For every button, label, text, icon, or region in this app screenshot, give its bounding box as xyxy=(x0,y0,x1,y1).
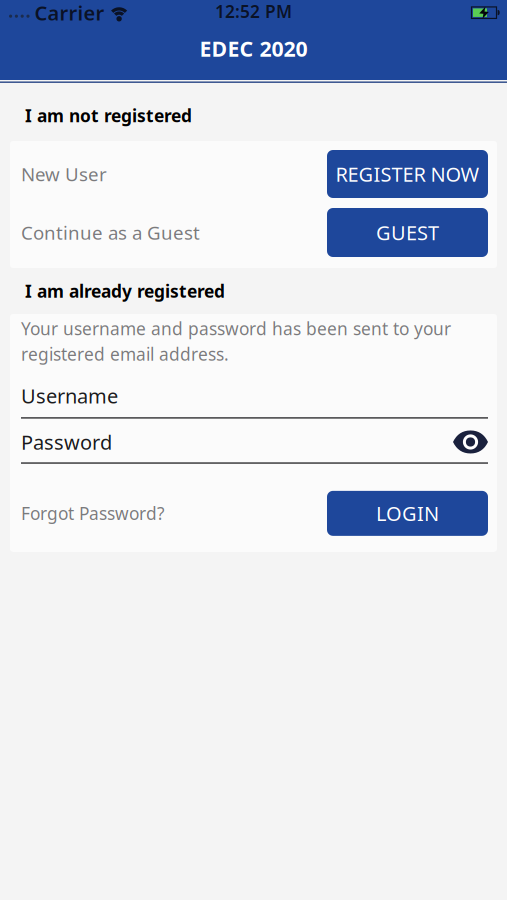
button[interactable]: GUEST xyxy=(327,208,488,257)
button[interactable]: Forgot Password? xyxy=(21,502,165,525)
button[interactable]: Username xyxy=(21,382,488,419)
staticText: LOGIN xyxy=(376,500,439,527)
staticText: Forgot Password? xyxy=(21,502,165,525)
button[interactable]: Password xyxy=(21,429,488,464)
staticText: Password xyxy=(21,429,112,455)
staticText: REGISTER NOW xyxy=(335,161,479,187)
staticText: Continue as a Guest xyxy=(21,220,200,245)
staticText: Your username and password has been sent… xyxy=(21,317,451,365)
staticText: Username xyxy=(21,382,118,409)
button[interactable]: LOGIN xyxy=(327,491,488,536)
staticText: Carrier xyxy=(35,0,105,26)
button[interactable] xyxy=(453,430,488,453)
staticText: GUEST xyxy=(376,219,439,246)
staticText: 12:52 PM xyxy=(215,0,292,23)
staticText: I am already registered xyxy=(25,279,225,302)
staticText: New User xyxy=(21,162,107,186)
staticText: EDEC 2020 xyxy=(199,34,307,62)
button[interactable]: REGISTER NOW xyxy=(327,150,488,198)
staticText: I am not registered xyxy=(25,104,192,127)
